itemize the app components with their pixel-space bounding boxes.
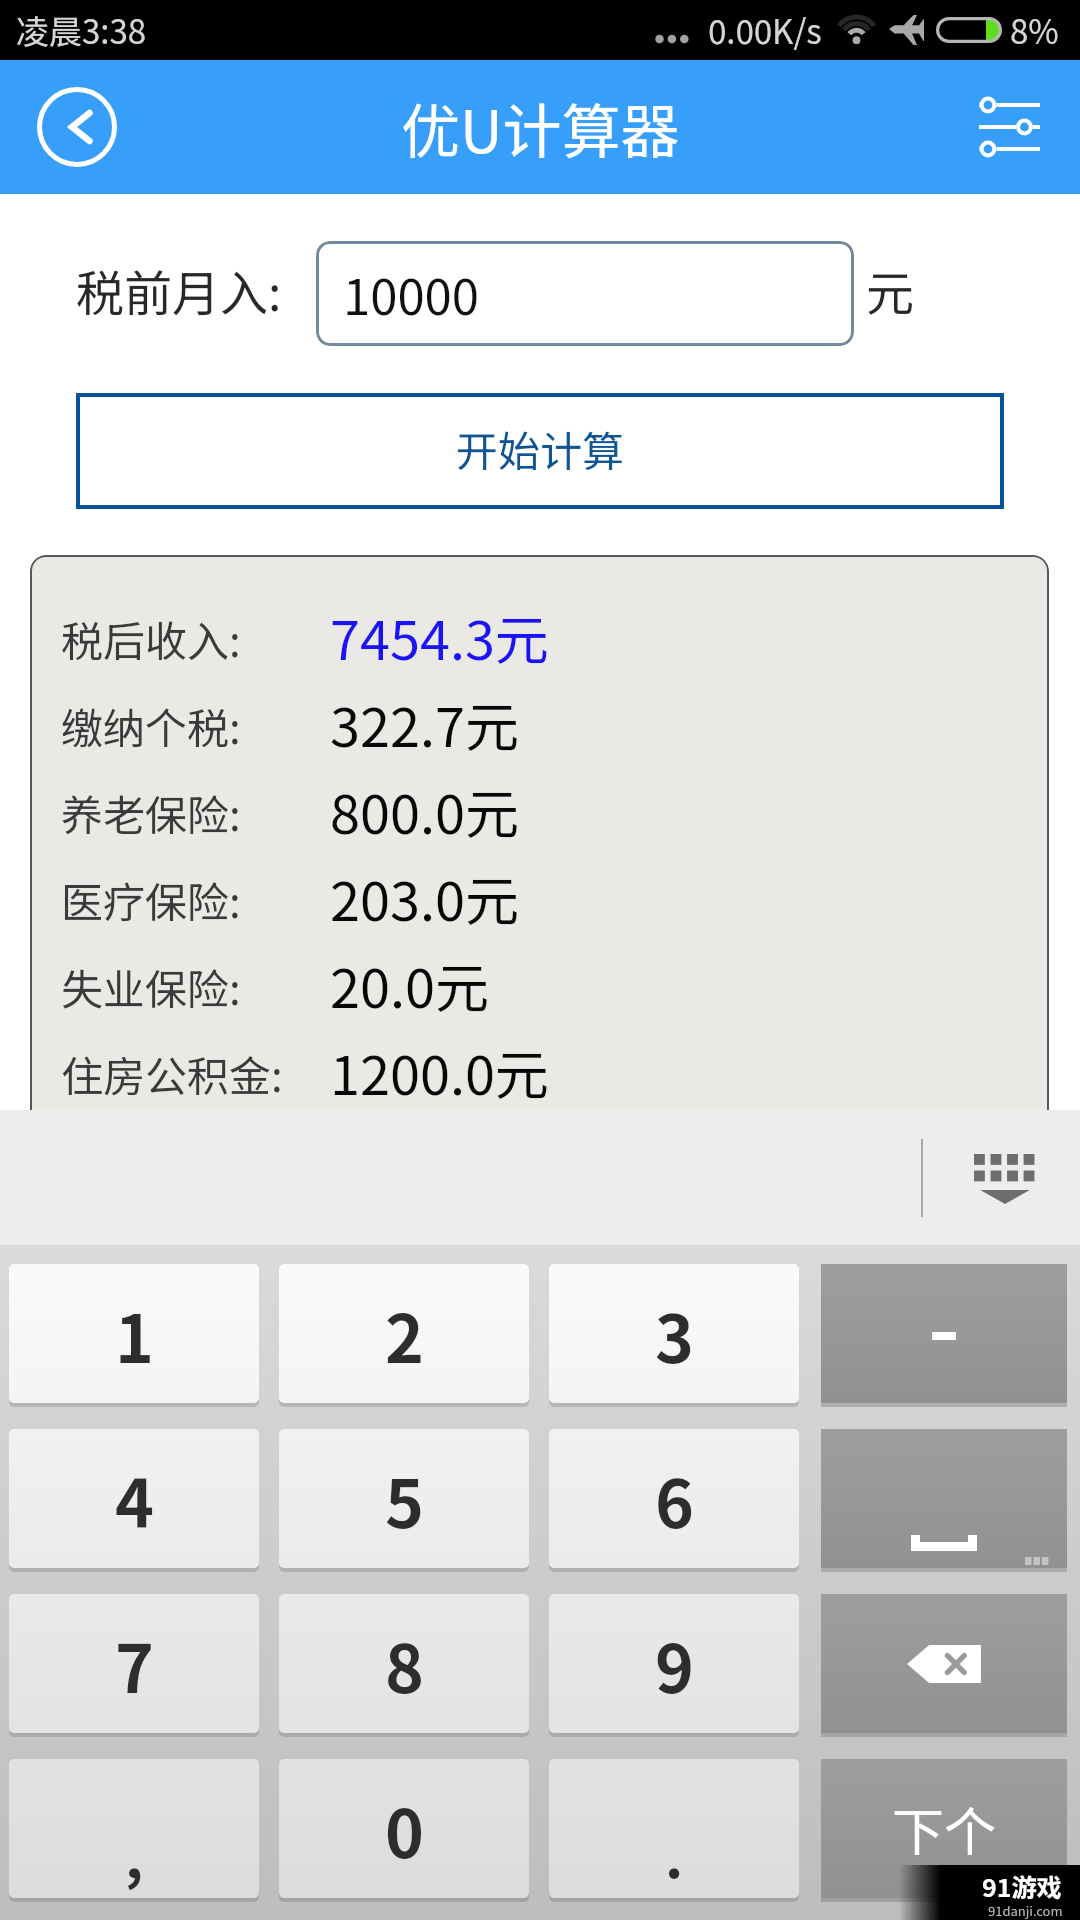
button[interactable]: 开始计算 bbox=[76, 393, 1004, 509]
staticText: 91danji.com bbox=[988, 1901, 1063, 1920]
staticText: 8 bbox=[385, 1616, 424, 1712]
staticText: . bbox=[665, 1813, 684, 1894]
button[interactable] bbox=[821, 1429, 1067, 1568]
staticText: , bbox=[125, 1813, 144, 1894]
staticText: 7454.3元 bbox=[330, 597, 549, 675]
staticText: 7 bbox=[115, 1616, 154, 1712]
button[interactable]: Settings bbox=[957, 75, 1061, 179]
staticText: 凌晨3:38 bbox=[16, 6, 147, 54]
button[interactable]: 5 bbox=[279, 1429, 529, 1568]
staticText: 5 bbox=[385, 1451, 424, 1547]
button[interactable]: Back bbox=[22, 72, 132, 182]
button[interactable]: 10000 bbox=[316, 241, 854, 346]
staticText: 下个 bbox=[892, 1791, 997, 1866]
staticText: 失业保险: bbox=[61, 956, 241, 1017]
button[interactable]: 3 bbox=[549, 1264, 799, 1403]
button[interactable] bbox=[821, 1594, 1067, 1733]
staticText: 9 bbox=[655, 1616, 694, 1712]
button[interactable]: 7 bbox=[9, 1594, 259, 1733]
staticText: 322.7元 bbox=[330, 684, 519, 762]
staticText: 0.00K/s bbox=[708, 6, 822, 54]
button[interactable]: 2 bbox=[279, 1264, 529, 1403]
staticText: 91游戏 bbox=[982, 1868, 1062, 1904]
button[interactable]: 8 bbox=[279, 1594, 529, 1733]
staticText: 8% bbox=[1010, 6, 1059, 54]
staticText: 元 bbox=[866, 255, 915, 325]
staticText: 优U计算器 bbox=[401, 85, 680, 170]
staticText: 800.0元 bbox=[330, 771, 519, 849]
button[interactable]: 6 bbox=[549, 1429, 799, 1568]
button[interactable]: 4 bbox=[9, 1429, 259, 1568]
button[interactable]: 9 bbox=[549, 1594, 799, 1733]
button[interactable]: . bbox=[549, 1759, 799, 1898]
staticText: 10000 bbox=[343, 258, 479, 329]
staticText: 税后收入: bbox=[61, 608, 241, 669]
staticText: 住房公积金: bbox=[61, 1043, 283, 1104]
staticText: 6 bbox=[655, 1451, 694, 1547]
button[interactable]: 1 bbox=[9, 1264, 259, 1403]
staticText: 20.0元 bbox=[330, 945, 489, 1023]
staticText: 2 bbox=[385, 1286, 424, 1382]
staticText: 4 bbox=[115, 1451, 154, 1547]
staticText: 203.0元 bbox=[330, 858, 519, 936]
staticText: 税前月入: bbox=[76, 255, 282, 325]
button[interactable]: , bbox=[9, 1759, 259, 1898]
staticText: 缴纳个税: bbox=[61, 695, 241, 756]
button[interactable] bbox=[821, 1264, 1067, 1403]
staticText: 0 bbox=[385, 1781, 424, 1877]
staticText: 3 bbox=[655, 1286, 694, 1382]
staticText: 医疗保险: bbox=[61, 869, 241, 930]
staticText: 养老保险: bbox=[61, 782, 241, 843]
staticText: 1 bbox=[115, 1286, 154, 1382]
button[interactable]: 0 bbox=[279, 1759, 529, 1898]
button[interactable]: 下个 bbox=[821, 1759, 1067, 1898]
staticText: 开始计算 bbox=[456, 418, 625, 479]
staticText: 1200.0元 bbox=[330, 1032, 549, 1110]
button[interactable]: Hide keyboard bbox=[957, 1130, 1053, 1226]
